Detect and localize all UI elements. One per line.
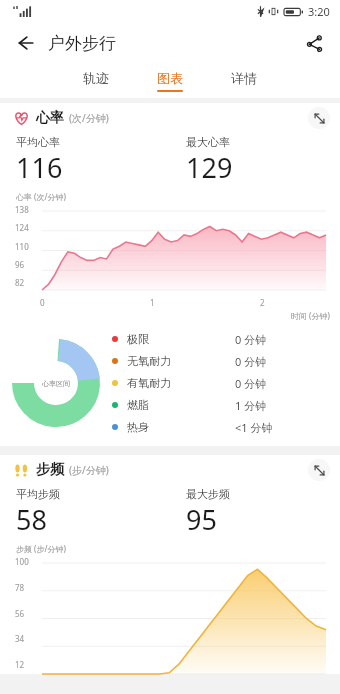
staticText: 户外步行 [48,33,116,54]
staticText: 124 [15,222,29,233]
button[interactable]: 图表 [133,64,207,98]
staticText: 78 [15,582,25,593]
button[interactable]: Expand cadence chart [308,459,330,481]
staticText: <1 分钟 [235,420,273,435]
staticText: 极限 [127,332,235,346]
staticText: 心率 (次/分钟) [16,191,66,202]
button[interactable]: Back [8,26,42,60]
staticText: (次/分钟) [69,111,109,125]
staticText: 129 [186,149,233,186]
staticText: 82 [15,277,25,288]
staticText: 平均心率 [16,135,60,149]
staticText: 详情 [231,70,257,86]
staticText: 最大心率 [186,135,230,149]
staticText: 有氧耐力 [127,376,235,390]
button[interactable]: 轨迹 [59,64,133,98]
staticText: 热身 [127,420,235,434]
staticText: 138 [15,204,29,215]
staticText: (步/分钟) [69,463,109,477]
button[interactable]: 详情 [207,64,281,98]
staticText: 图表 [157,70,183,86]
staticText: 轨迹 [83,70,109,86]
staticText: 1 分钟 [235,398,267,413]
staticText: 1 [150,297,155,308]
staticText: 3:20 [308,4,330,19]
staticText: 无氧耐力 [127,354,235,368]
staticText: 58 [16,501,47,538]
staticText: 34 [15,633,25,644]
staticText: 步频 [36,461,64,479]
staticText: 心率 [36,109,64,127]
button[interactable]: Share [297,26,331,60]
staticText: 95 [186,501,217,538]
staticText: 96 [15,259,25,270]
staticText: 最大步频 [186,487,230,501]
staticText: 56 [15,608,25,619]
staticText: 2 [260,297,265,308]
staticText: 110 [15,241,29,252]
button[interactable]: Expand heart rate chart [308,107,330,129]
staticText: 步频 (步/分钟) [16,543,66,554]
staticText: 0 分钟 [235,332,267,347]
staticText: 0 [40,297,45,308]
staticText: 平均步频 [16,487,60,501]
staticText: 时间 (分钟) [291,310,330,321]
staticText: 燃脂 [127,398,235,412]
staticText: 12 [15,659,25,670]
staticText: 0 分钟 [235,354,267,369]
staticText: 心率区间 [42,379,70,388]
staticText: 0 分钟 [235,376,267,391]
staticText: 100 [15,556,29,567]
staticText: 116 [16,149,63,186]
